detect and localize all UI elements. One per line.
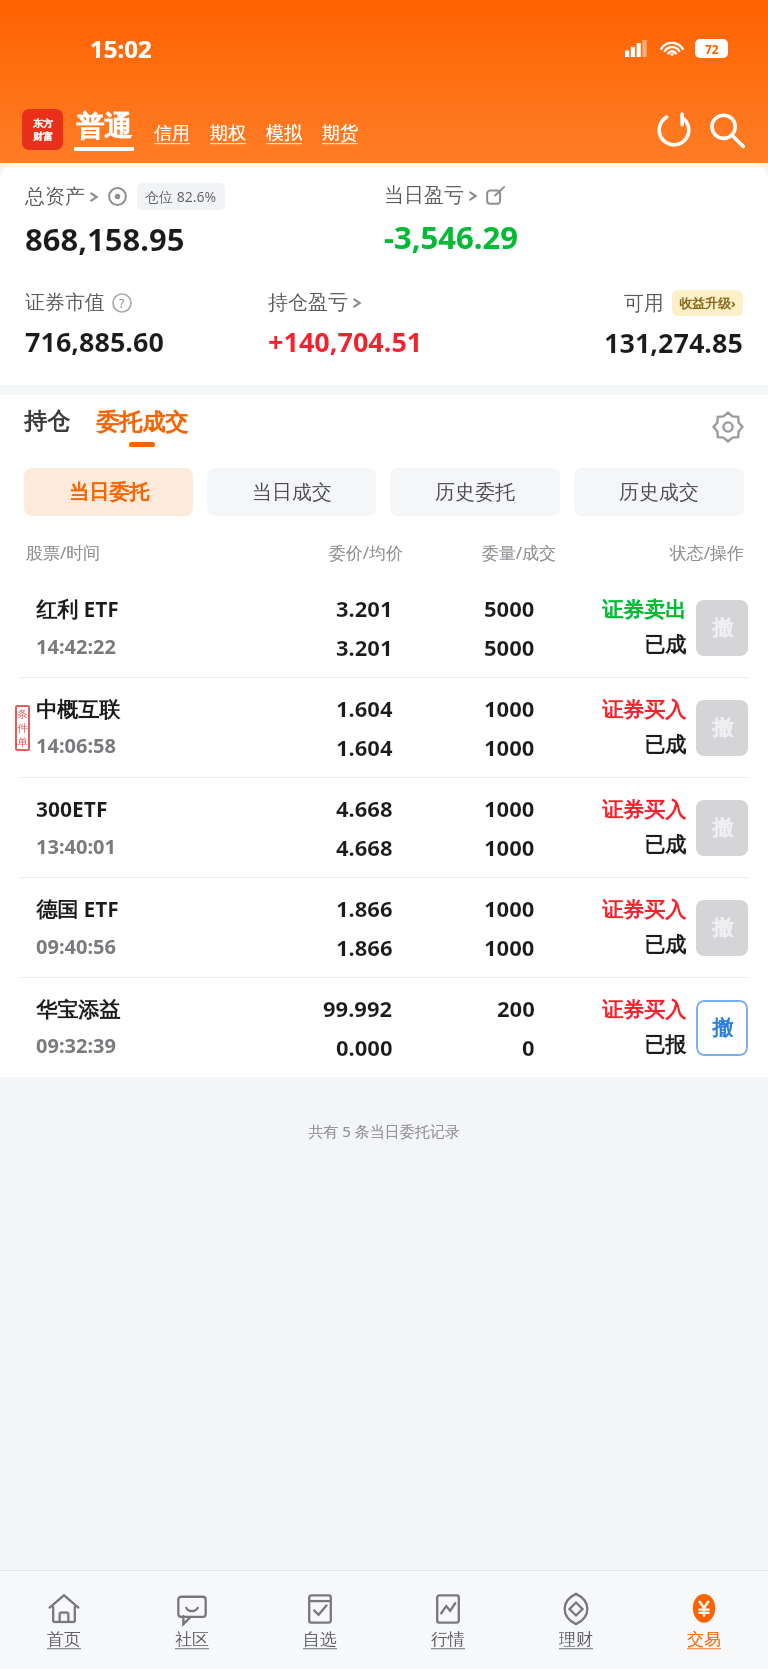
button[interactable]: 当日委托 <box>24 468 193 516</box>
staticText: 撤 <box>712 815 733 841</box>
staticText: 状态/操作 <box>556 541 744 564</box>
button[interactable]: 期权 <box>210 114 246 145</box>
staticText: 证券买入 <box>602 697 686 723</box>
button[interactable]: 当日成交 <box>207 468 376 516</box>
button[interactable]: 历史委托 <box>390 468 560 516</box>
staticText: 财富 <box>33 130 53 143</box>
staticText: 13:40:01 <box>36 833 116 860</box>
button[interactable]: Refresh <box>654 110 694 150</box>
staticText: 已成 <box>644 832 686 858</box>
staticText: 已报 <box>644 1032 686 1058</box>
staticText: 0.000 <box>336 1032 393 1062</box>
staticText: 红利 ETF <box>36 595 119 624</box>
button[interactable]: 条 <box>0 678 768 777</box>
staticText: 已成 <box>644 632 686 658</box>
staticText: 历史委托 <box>435 480 515 505</box>
staticText: 撤 <box>712 615 733 641</box>
button[interactable]: 社区 <box>128 1571 256 1669</box>
staticText: 1.866 <box>336 932 393 962</box>
staticText: 撤 <box>712 715 733 741</box>
staticText: 当日盈亏 <box>384 183 464 208</box>
staticText: 华宝添益 <box>36 997 120 1023</box>
staticText: 4.668 <box>336 832 393 862</box>
button[interactable]: 撤单 <box>696 600 748 656</box>
staticText: 1.604 <box>336 732 393 762</box>
button[interactable]: 委托成交 <box>96 408 188 447</box>
staticText: 股票/时间 <box>26 541 229 564</box>
button[interactable]: 收益升级› <box>672 290 743 316</box>
button[interactable]: 交易 <box>640 1571 768 1669</box>
button[interactable]: 当日盈亏 <box>384 183 505 208</box>
staticText: 4.668 <box>336 793 393 823</box>
staticText: 1000 <box>484 693 535 723</box>
button[interactable]: 撤单 <box>696 1000 748 1056</box>
staticText: 1000 <box>484 932 535 962</box>
button[interactable]: 持仓 <box>24 407 70 447</box>
button[interactable]: 理财 <box>512 1571 640 1669</box>
staticText: 可用 <box>624 291 664 316</box>
staticText: 当日成交 <box>252 480 332 505</box>
button[interactable]: 模拟 <box>266 114 302 145</box>
staticText: 14:42:22 <box>36 633 116 660</box>
button[interactable]: 期货 <box>322 114 358 145</box>
staticText: 3.201 <box>336 632 393 662</box>
staticText: 1000 <box>484 732 535 762</box>
staticText: 716,885.60 <box>25 323 164 360</box>
button[interactable]: 普通 <box>74 109 134 151</box>
staticText: ? <box>119 295 125 311</box>
staticText: 中概互联 <box>36 697 120 723</box>
staticText: 09:32:39 <box>36 1032 116 1059</box>
staticText: 委量/成交 <box>403 541 556 564</box>
staticText: 总资产 <box>25 184 85 209</box>
staticText: 德国 ETF <box>36 895 119 924</box>
staticText: +140,704.51 <box>268 323 423 360</box>
button[interactable]: Settings <box>710 409 746 445</box>
staticText: 期权 <box>210 122 246 145</box>
staticText: 持仓盈亏 <box>268 290 348 315</box>
staticText: 证券买入 <box>602 797 686 823</box>
staticText: 历史成交 <box>619 480 699 505</box>
staticText: 1000 <box>484 893 535 923</box>
button[interactable]: 撤单 <box>696 900 748 956</box>
staticText: 委价/均价 <box>229 541 403 564</box>
staticText: 行情 <box>431 1629 465 1650</box>
staticText: 理财 <box>559 1629 593 1650</box>
staticText: 0 <box>522 1032 535 1062</box>
staticText: 撤 <box>712 1015 733 1041</box>
button[interactable]: 华宝添益 <box>0 978 768 1077</box>
staticText: 证券买入 <box>602 997 686 1023</box>
staticText: 131,274.85 <box>604 324 743 361</box>
staticText: 首页 <box>47 1629 81 1650</box>
button[interactable]: 300ETF <box>0 778 768 877</box>
staticText: 信用 <box>154 122 190 145</box>
staticText: 单 <box>17 735 28 749</box>
staticText: 1000 <box>484 832 535 862</box>
button[interactable]: 信用 <box>154 114 190 145</box>
staticText: 15:02 <box>90 32 152 65</box>
button[interactable]: 德国 ETF <box>0 878 768 977</box>
staticText: 3.201 <box>336 593 393 623</box>
staticText: 自选 <box>303 1629 337 1650</box>
staticText: 收益升级› <box>679 294 736 312</box>
staticText: 共有 5 条当日委托记录 <box>0 1121 768 1141</box>
staticText: 已成 <box>644 932 686 958</box>
button[interactable]: 自选 <box>256 1571 384 1669</box>
button[interactable]: 首页 <box>0 1571 128 1669</box>
staticText: 社区 <box>175 1629 209 1650</box>
staticText: 5000 <box>484 632 535 662</box>
button[interactable]: 持仓盈亏 <box>268 290 361 315</box>
button[interactable]: 历史成交 <box>574 468 744 516</box>
staticText: 期货 <box>322 122 358 145</box>
button[interactable]: 撤单 <box>696 800 748 856</box>
staticText: 14:06:58 <box>36 732 116 759</box>
staticText: 99.992 <box>323 993 393 1023</box>
button[interactable]: 撤单 <box>696 700 748 756</box>
button[interactable]: Search <box>706 110 746 150</box>
button[interactable]: 总资产 <box>25 183 225 210</box>
button[interactable]: 红利 ETF <box>0 578 768 677</box>
staticText: 868,158.95 <box>25 218 185 260</box>
staticText: 1000 <box>484 793 535 823</box>
button[interactable]: 行情 <box>384 1571 512 1669</box>
staticText: 模拟 <box>266 122 302 145</box>
staticText: 5000 <box>484 593 535 623</box>
